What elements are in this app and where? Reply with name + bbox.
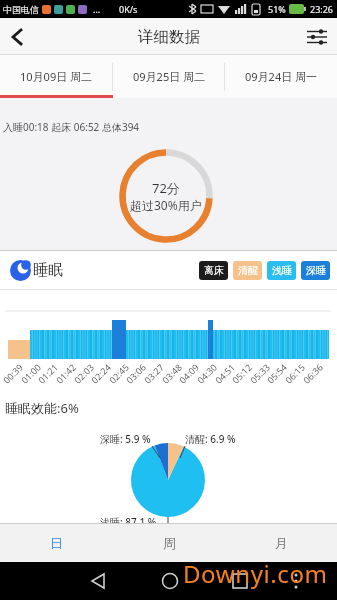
staticText: 05:12 [229,360,255,386]
staticText: 浅睡: 87.1 % [100,515,157,529]
staticText: 10月09日 周二 [20,69,93,84]
staticText: 05:54 [264,360,290,386]
button[interactable]: 09月25日 周二 [113,55,225,98]
staticText: 超过30%用户 [130,197,202,213]
button[interactable] [297,18,337,55]
staticText: 清醒: 6.9 % [185,432,236,446]
staticText: 0K/s [119,3,138,15]
staticText: … [93,3,101,15]
staticText: 03:06 [123,360,149,386]
staticText: 03:48 [159,360,185,386]
staticText: 入睡00:18 起床 06:52 总体394 [3,120,140,134]
button[interactable] [0,20,34,54]
staticText: 06:36 [300,360,326,386]
staticText: 03:27 [141,360,167,386]
button[interactable]: 周 [113,523,225,562]
staticText: 详细数据 [138,27,200,47]
staticText: 04:30 [194,360,220,386]
staticText: 02:45 [106,360,132,386]
staticText: 04:51 [212,360,238,386]
staticText: 51% [268,3,286,15]
staticText: 深睡 [306,264,326,277]
button[interactable]: 清醒 [233,261,262,280]
button[interactable]: 深睡 [301,261,330,280]
staticText: 月 [275,535,288,551]
staticText: 05:33 [247,360,273,386]
staticText: 离床 [204,264,224,277]
staticText: 04:09 [176,360,202,386]
staticText: 睡眠效能:6% [5,399,79,417]
staticText: 清醒 [238,264,258,277]
button[interactable]: 月 [225,523,337,562]
staticText: 中国电信 [3,4,39,15]
button[interactable]: 离床 [199,261,228,280]
staticText: 09月25日 周二 [133,69,206,84]
staticText: 睡眠 [33,261,63,280]
staticText: 23:26 [310,3,334,15]
staticText: 01:00 [18,360,44,386]
staticText: 深睡: 5.9 % [100,432,151,446]
staticText: 72分 [152,179,180,197]
staticText: 浅睡 [272,264,292,277]
staticText: 00:39 [0,360,26,386]
button[interactable]: 10月09日 周二 [0,55,113,98]
staticText: 02:03 [71,360,97,386]
staticText: 09月24日 周一 [245,69,318,84]
staticText: 周 [163,535,176,551]
button[interactable]: 09月24日 周一 [225,55,337,98]
staticText: 02:24 [88,360,114,386]
staticText: Downyi.com [183,557,328,590]
staticText: 01:21 [35,360,61,386]
staticText: 01:42 [53,360,79,386]
staticText: 日 [50,535,63,551]
button[interactable]: 浅睡 [267,261,296,280]
staticText: 06:15 [282,360,308,386]
button[interactable]: 日 [0,523,113,562]
